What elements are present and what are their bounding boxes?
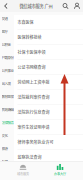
button[interactable]: 劳动网上工资申报 [14, 75, 83, 90]
staticText: 法律服务 [1, 120, 13, 125]
button[interactable]: 公共事业 [0, 64, 14, 77]
button[interactable]: 律师事务所执业许可 [14, 135, 83, 150]
button[interactable]: 户籍身份 [0, 51, 14, 64]
button[interactable]: 医保转移接续 [14, 30, 83, 45]
staticText: 市直医保 [17, 19, 33, 25]
button[interactable]: 社保卡医保申领 [14, 45, 83, 60]
button[interactable]: 案件生效证明申请 [14, 120, 83, 135]
staticText: 社保卡医保申领 [17, 49, 45, 55]
staticText: 公证书网络查询 [17, 64, 45, 70]
staticText: 教育医保 [1, 94, 13, 99]
staticText: 律师事务所执业许可 [17, 139, 53, 145]
button[interactable]: 法院执行信息查询 [14, 105, 83, 120]
staticText: 办事大厅 [54, 172, 66, 176]
staticText: 监察执法查询 [17, 154, 41, 160]
button[interactable]: 监察执法查询 [14, 150, 83, 165]
button[interactable]: 城市服务 [11, 161, 35, 178]
button[interactable]: 公积金 [0, 38, 14, 51]
button[interactable]: 出入境 [0, 77, 14, 90]
staticText: 旅游 [1, 146, 7, 151]
staticText: 法院裁判案件查询 [17, 94, 49, 100]
button[interactable]: 医疗 [0, 25, 14, 38]
button[interactable]: Profile [71, 0, 83, 12]
staticText: 劳动网上工资申报 [17, 79, 49, 85]
staticText: 民政婚姻 [1, 107, 13, 112]
button[interactable]: 办事大厅 [48, 161, 72, 178]
staticText: 交通 [1, 16, 7, 21]
button[interactable]: 社保 [0, 155, 14, 168]
staticText: 公共事业 [1, 68, 13, 73]
button[interactable]: 法律服务 [0, 116, 14, 129]
button[interactable]: 文化 [0, 129, 14, 142]
staticText: 医疗 [1, 29, 7, 34]
staticText: 公积金 [1, 42, 10, 47]
staticText: 法院执行信息查询 [17, 109, 49, 115]
button[interactable]: 法院裁判案件查询 [14, 90, 83, 105]
staticText: 案件生效证明申请 [17, 124, 49, 130]
staticText: 医保转移接续 [17, 34, 41, 40]
button[interactable]: Back [0, 0, 12, 12]
staticText: 微信城市服务 广州 [19, 3, 52, 9]
staticText: 城市服务 [17, 172, 29, 176]
staticText: 文化 [1, 133, 7, 138]
button[interactable]: 交通 [0, 12, 14, 25]
button[interactable]: 民政婚姻 [0, 103, 14, 116]
button[interactable]: 教育医保 [0, 90, 14, 103]
staticText: 社保 [1, 159, 7, 164]
button[interactable]: 旅游 [0, 142, 14, 155]
button[interactable]: 市直医保 [14, 15, 83, 30]
button[interactable]: Search [60, 0, 71, 12]
staticText: 户籍身份 [1, 55, 13, 60]
staticText: 出入境 [1, 81, 10, 86]
button[interactable]: 公证书网络查询 [14, 60, 83, 75]
